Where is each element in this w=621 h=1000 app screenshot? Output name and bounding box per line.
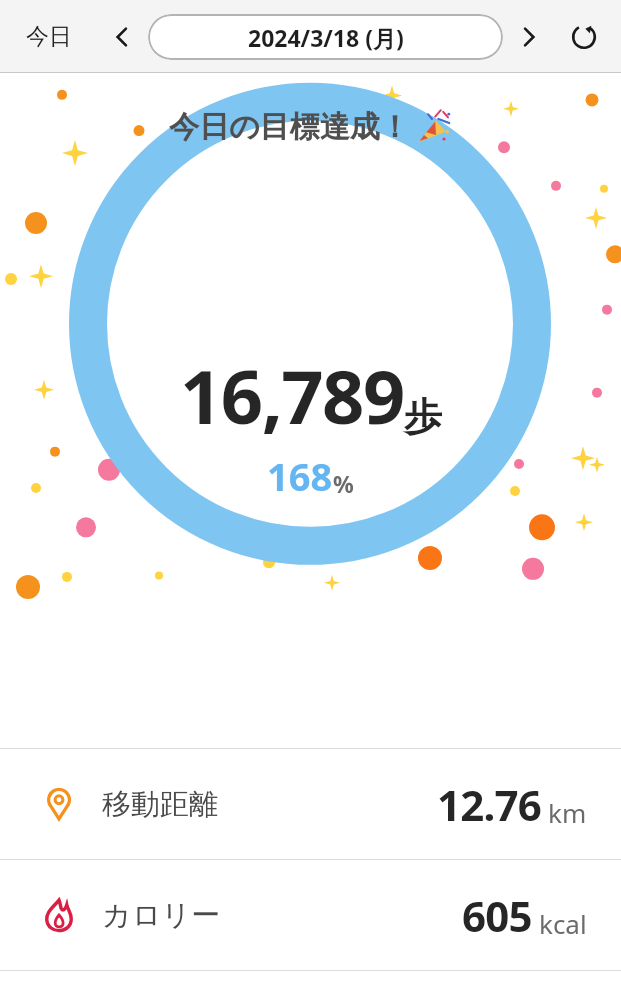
button[interactable]: Previous day — [100, 15, 144, 59]
button[interactable]: 移動距離 — [0, 749, 621, 859]
staticText: 168 — [267, 450, 333, 502]
staticText: 605 — [462, 887, 532, 944]
button[interactable]: 2024/3/18 (月) — [148, 14, 503, 60]
button[interactable]: カロリー — [0, 860, 621, 970]
staticText: 移動距離 — [102, 786, 218, 823]
staticText: 歩 — [404, 393, 442, 441]
staticText: 今日の目標達成！ — [169, 108, 410, 146]
button[interactable]: Refresh — [561, 14, 607, 60]
staticText: 今日 — [26, 22, 72, 51]
staticText: 12.76 — [437, 776, 541, 833]
button[interactable]: 今日 — [14, 16, 84, 57]
staticText: km — [548, 795, 587, 830]
staticText: 2024/3/18 (月) — [248, 22, 404, 53]
button[interactable]: Next day — [507, 15, 551, 59]
staticText: kcal — [539, 906, 587, 941]
staticText: % — [333, 468, 354, 499]
staticText: カロリー — [102, 897, 221, 934]
staticText: 16,789 — [180, 345, 404, 446]
